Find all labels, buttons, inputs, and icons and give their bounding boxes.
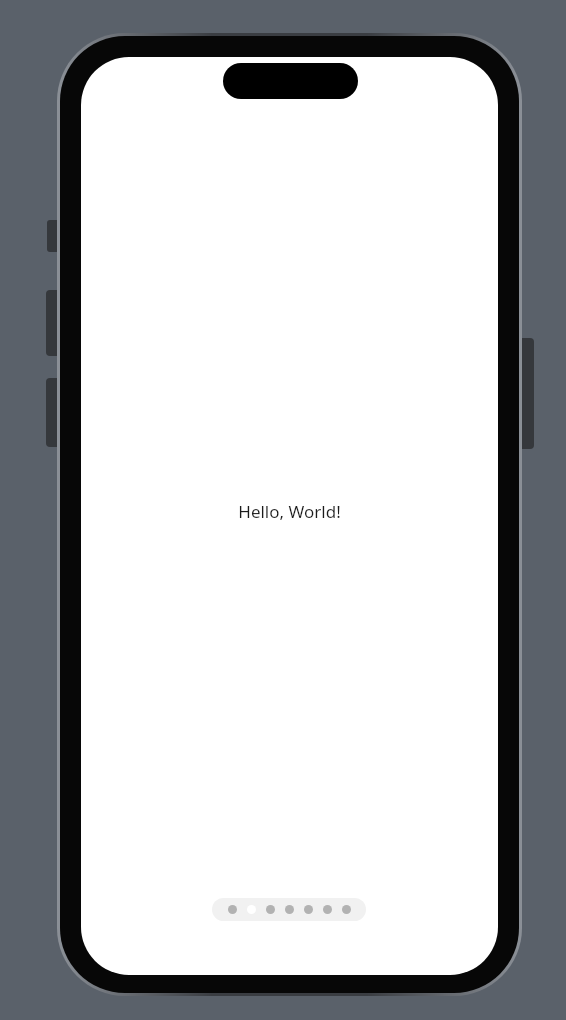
- staticText: Hello, World!: [238, 500, 341, 523]
- button[interactable]: [212, 898, 366, 921]
- button[interactable]: Volume up: [46, 290, 59, 356]
- button[interactable]: Power: [521, 338, 534, 449]
- button[interactable]: Volume down: [46, 378, 59, 447]
- other: Dynamic Island: [223, 63, 358, 99]
- button[interactable]: Ring/Silent switch: [47, 220, 59, 252]
